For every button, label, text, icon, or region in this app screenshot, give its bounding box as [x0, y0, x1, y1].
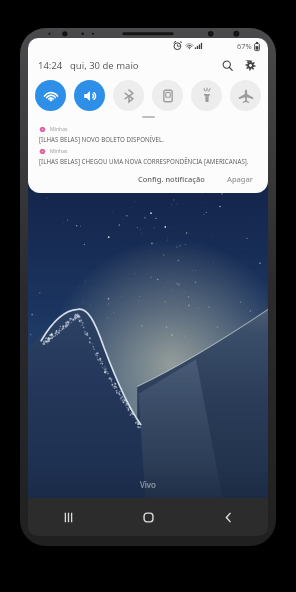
button[interactable]: Do not disturb [152, 80, 183, 111]
button[interactable]: Settings [241, 56, 259, 74]
button[interactable]: Bluetooth [113, 80, 144, 111]
button[interactable]: Airplane mode [230, 80, 261, 111]
staticText: 67% [237, 41, 252, 51]
staticText: 14:24 [38, 59, 63, 72]
button[interactable]: Wi-Fi [35, 80, 66, 111]
staticText: Vivo [140, 479, 156, 490]
button[interactable]: Config. notificação [133, 171, 210, 187]
staticText: Config. notificação [138, 174, 205, 184]
button[interactable]: Sound [74, 80, 105, 111]
button[interactable]: Back [211, 500, 245, 534]
staticText: qui, 30 de maio [70, 59, 139, 72]
button[interactable]: Apagar [222, 171, 258, 187]
button[interactable]: Minhas [28, 126, 268, 143]
staticText: Minhas [50, 126, 68, 133]
staticText: Apagar [227, 174, 253, 184]
button[interactable]: Recents [51, 500, 85, 534]
staticText: Minhas [50, 148, 68, 155]
button[interactable]: Minhas [28, 148, 268, 165]
staticText: [ILHAS BELAS] NOVO BOLETO DISPONÍVEL. [39, 135, 164, 143]
button[interactable]: Flashlight [191, 80, 222, 111]
staticText: [ILHAS BELAS] CHEGOU UMA NOVA CORRESPOND… [39, 157, 249, 165]
button[interactable]: Search [218, 56, 236, 74]
button[interactable]: Home [131, 500, 165, 534]
